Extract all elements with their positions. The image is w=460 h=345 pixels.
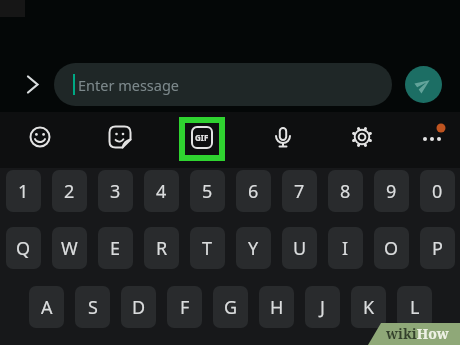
staticText: F [180, 295, 190, 320]
staticText: 9 [386, 179, 397, 204]
button[interactable]: J [305, 286, 340, 328]
button[interactable]: F [167, 286, 202, 328]
button[interactable]: S [75, 286, 110, 328]
staticText: Y [248, 236, 259, 261]
button[interactable]: G [213, 286, 248, 328]
staticText: G [224, 295, 238, 320]
button[interactable]: 0 [420, 170, 455, 212]
staticText: 4 [156, 179, 167, 204]
button[interactable]: P [420, 227, 455, 269]
staticText: 6 [248, 179, 259, 204]
button[interactable] [418, 125, 446, 153]
button[interactable]: 7 [282, 170, 317, 212]
button[interactable]: W [52, 227, 87, 269]
staticText: I [342, 236, 349, 261]
button[interactable]: R [144, 227, 179, 269]
staticText: O [384, 236, 399, 261]
button[interactable] [348, 123, 376, 151]
staticText: Q [16, 236, 31, 261]
staticText: K [363, 295, 375, 320]
staticText: 8 [340, 179, 351, 204]
button[interactable]: Q [6, 227, 41, 269]
button[interactable]: K [351, 286, 386, 328]
staticText: GIF [195, 132, 209, 143]
staticText: 3 [110, 179, 121, 204]
staticText: R [156, 236, 168, 261]
button[interactable]: 6 [236, 170, 271, 212]
staticText: 2 [64, 179, 75, 204]
button[interactable]: 3 [98, 170, 133, 212]
staticText: W [61, 236, 78, 261]
button[interactable] [26, 123, 54, 151]
staticText: P [432, 236, 443, 261]
button[interactable]: A [29, 286, 64, 328]
staticText: S [88, 295, 98, 320]
staticText: wikiHow [386, 324, 449, 343]
staticText: U [293, 236, 307, 261]
staticText: 1 [18, 179, 29, 204]
staticText: H [270, 295, 284, 320]
button[interactable] [179, 117, 225, 161]
button[interactable]: Y [236, 227, 271, 269]
button[interactable]: 4 [144, 170, 179, 212]
staticText: Enter message [78, 75, 180, 95]
button[interactable] [269, 123, 297, 151]
staticText: J [320, 295, 325, 320]
button[interactable]: T [190, 227, 225, 269]
staticText: 0 [432, 179, 443, 204]
button[interactable]: 8 [328, 170, 363, 212]
staticText: L [410, 295, 420, 320]
button[interactable]: L [397, 286, 432, 328]
staticText: 7 [294, 179, 305, 204]
button[interactable]: 9 [374, 170, 409, 212]
button[interactable]: E [98, 227, 133, 269]
button[interactable]: O [374, 227, 409, 269]
button[interactable]: 2 [52, 170, 87, 212]
button[interactable]: H [259, 286, 294, 328]
button[interactable]: 5 [190, 170, 225, 212]
button[interactable]: I [328, 227, 363, 269]
button[interactable]: D [121, 286, 156, 328]
button[interactable] [106, 123, 134, 151]
staticText: D [132, 295, 146, 320]
staticText: 5 [202, 179, 213, 204]
button[interactable] [20, 70, 48, 98]
button[interactable] [405, 66, 442, 103]
staticText: E [110, 236, 121, 261]
button[interactable]: U [282, 227, 317, 269]
staticText: A [41, 295, 53, 320]
staticText: T [202, 236, 213, 261]
button[interactable]: 1 [6, 170, 41, 212]
button[interactable]: Enter message [54, 63, 392, 106]
